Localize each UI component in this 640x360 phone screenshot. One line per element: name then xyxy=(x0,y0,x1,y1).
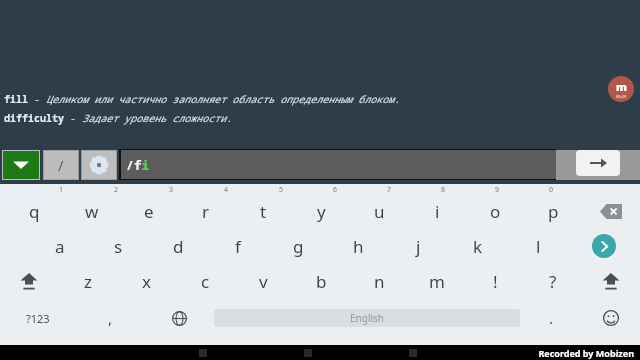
button[interactable]: f xyxy=(208,229,268,263)
staticText: . xyxy=(549,308,554,328)
staticText: m xyxy=(616,79,627,94)
button[interactable]: Recents xyxy=(360,345,465,360)
staticText: a xyxy=(55,235,65,258)
staticText: h xyxy=(353,235,364,258)
button[interactable]: Backspace xyxy=(582,194,640,228)
staticText: Recorded by Mobizen xyxy=(538,347,634,359)
button[interactable]: t xyxy=(234,194,292,228)
button[interactable]: e xyxy=(120,194,177,228)
staticText: 2 xyxy=(114,185,119,195)
staticText: 8 xyxy=(441,185,446,195)
staticText: 5 xyxy=(279,185,284,195)
button[interactable]: p xyxy=(524,194,582,228)
staticText: 4 xyxy=(224,185,229,195)
staticText: 0 xyxy=(549,185,554,195)
staticText: 1 xyxy=(59,185,64,195)
button[interactable]: r xyxy=(177,194,234,228)
button[interactable]: c xyxy=(176,264,234,298)
staticText: n xyxy=(374,270,385,293)
button[interactable]: g xyxy=(268,229,328,263)
button[interactable]: English xyxy=(214,309,520,327)
staticText: j xyxy=(416,235,421,258)
button[interactable]: , xyxy=(76,301,144,335)
staticText: c xyxy=(201,270,210,293)
staticText: w xyxy=(85,200,99,223)
button[interactable]: Enter xyxy=(576,150,620,176)
staticText: 3 xyxy=(169,185,174,195)
staticText: i xyxy=(435,200,440,223)
button[interactable]: Open command list xyxy=(3,151,39,179)
staticText: /fi xyxy=(126,156,150,174)
staticText: d xyxy=(173,235,184,258)
button[interactable]: Mobizen recording xyxy=(608,76,634,102)
button[interactable]: m xyxy=(408,264,466,298)
button[interactable]: Emoji xyxy=(582,301,640,335)
staticText: ! xyxy=(493,270,498,293)
button[interactable]: y xyxy=(292,194,350,228)
staticText: 9 xyxy=(495,185,500,195)
staticText: z xyxy=(84,270,92,293)
button[interactable]: Next suggestion xyxy=(568,229,640,263)
staticText: m xyxy=(429,270,445,293)
button[interactable]: d xyxy=(148,229,208,263)
button[interactable]: h xyxy=(328,229,388,263)
staticText: o xyxy=(490,200,501,223)
staticText: p xyxy=(548,200,559,223)
button[interactable]: . xyxy=(520,301,582,335)
staticText: s xyxy=(114,235,123,258)
button[interactable]: / xyxy=(44,151,78,179)
staticText: e xyxy=(144,200,154,223)
staticText: g xyxy=(293,235,304,258)
button[interactable]: l xyxy=(508,229,568,263)
button[interactable]: q xyxy=(6,194,63,228)
staticText: , xyxy=(108,308,113,328)
staticText: f xyxy=(235,235,241,258)
staticText: r xyxy=(202,200,210,223)
staticText: b xyxy=(316,270,327,293)
button[interactable]: a xyxy=(30,229,89,263)
staticText: / xyxy=(58,155,64,175)
staticText: difficulty - Задает уровень сложности. xyxy=(4,111,232,125)
button[interactable]: i xyxy=(408,194,466,228)
button[interactable]: x xyxy=(117,264,176,298)
staticText: x xyxy=(142,270,151,293)
staticText: q xyxy=(29,200,40,223)
staticText: k xyxy=(473,235,483,258)
button[interactable]: s xyxy=(89,229,148,263)
staticText: 7 xyxy=(387,185,392,195)
button[interactable]: v xyxy=(234,264,292,298)
button[interactable]: Change language xyxy=(144,301,214,335)
button[interactable]: u xyxy=(350,194,408,228)
button[interactable]: w xyxy=(63,194,120,228)
staticText: ? xyxy=(549,270,557,293)
staticText: u xyxy=(374,200,385,223)
button[interactable]: n xyxy=(350,264,408,298)
staticText: ?123 xyxy=(26,311,50,326)
staticText: fill - Целиком или частично заполняет об… xyxy=(4,92,400,106)
button[interactable]: Shift xyxy=(0,264,58,298)
button[interactable]: Shift xyxy=(582,264,640,298)
button[interactable]: o xyxy=(466,194,524,228)
button[interactable]: ! xyxy=(466,264,524,298)
button[interactable]: ?123 xyxy=(0,301,76,335)
staticText: 6 xyxy=(333,185,338,195)
staticText: y xyxy=(317,200,326,223)
button[interactable]: Settings xyxy=(82,151,116,179)
button[interactable]: Home xyxy=(255,345,360,360)
button[interactable]: k xyxy=(448,229,508,263)
button[interactable]: Back xyxy=(150,345,255,360)
button[interactable]: /fi xyxy=(121,150,556,179)
button[interactable]: b xyxy=(292,264,350,298)
staticText: l xyxy=(536,235,541,258)
button[interactable]: z xyxy=(58,264,117,298)
button[interactable]: ? xyxy=(524,264,582,298)
button[interactable]: j xyxy=(388,229,448,263)
staticText: v xyxy=(259,270,268,293)
staticText: 06:29 xyxy=(616,94,627,99)
staticText: English xyxy=(350,311,385,325)
staticText: t xyxy=(260,200,267,223)
